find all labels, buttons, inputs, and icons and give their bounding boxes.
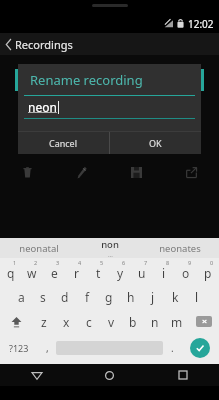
staticText: q <box>7 265 15 281</box>
button[interactable]: 8 <box>153 258 175 284</box>
staticText: n <box>151 314 159 330</box>
staticText: c <box>86 314 92 330</box>
button[interactable]: Share <box>164 160 219 184</box>
staticText: v <box>108 314 115 330</box>
staticText: 6 <box>122 259 126 266</box>
staticText: o <box>182 265 190 281</box>
button[interactable]: d <box>54 284 76 309</box>
button[interactable]: 0 <box>197 258 219 284</box>
button[interactable]: x <box>55 309 78 334</box>
button[interactable]: Backspace <box>188 309 219 334</box>
button[interactable]: OK <box>110 132 201 154</box>
staticText: t <box>96 265 101 281</box>
staticText: 9 <box>188 259 192 266</box>
staticText: f <box>85 289 90 305</box>
staticText: m <box>171 314 183 330</box>
button[interactable]: non <box>78 238 141 258</box>
button[interactable]: Done <box>190 338 210 358</box>
button[interactable]: Recordings <box>0 33 77 55</box>
button[interactable]: neonatal <box>0 238 78 258</box>
staticText: OK <box>149 137 162 149</box>
button[interactable]: m <box>166 309 188 334</box>
button[interactable]: Save <box>109 160 164 184</box>
staticText: Rename recording <box>30 71 143 89</box>
button[interactable]: s <box>32 284 54 309</box>
button[interactable]: 7 <box>131 258 153 284</box>
staticText: 7 <box>144 259 148 266</box>
button[interactable]: h <box>120 284 142 309</box>
button[interactable]: Back <box>0 364 73 386</box>
button[interactable]: Recents <box>146 364 219 386</box>
staticText: 8 <box>166 259 170 266</box>
button[interactable]: ?123 <box>0 334 38 362</box>
staticText: 3 <box>56 259 60 266</box>
staticText: z <box>41 314 47 330</box>
staticText: neon <box>28 99 57 115</box>
button[interactable]: 1 <box>0 258 21 284</box>
staticText: 12:02 <box>188 17 214 31</box>
staticText: . <box>171 341 174 355</box>
button[interactable]: z <box>32 309 55 334</box>
button[interactable]: Cancel <box>18 132 109 154</box>
button[interactable]: a <box>10 284 32 309</box>
button[interactable]: f <box>76 284 98 309</box>
staticText: w <box>27 265 37 281</box>
button[interactable]: Home <box>73 364 146 386</box>
button[interactable]: n <box>144 309 166 334</box>
button[interactable]: b <box>122 309 144 334</box>
staticText: ··· <box>108 252 113 258</box>
staticText: a <box>18 289 25 305</box>
staticText: non <box>101 238 119 251</box>
button[interactable]: l <box>186 284 208 309</box>
staticText: l <box>195 289 199 305</box>
staticText: Recordings <box>15 37 73 52</box>
staticText: x <box>63 314 70 330</box>
button[interactable]: 9 <box>175 258 197 284</box>
staticText: 0 <box>210 259 214 266</box>
staticText: 2 <box>34 259 38 266</box>
button[interactable]: 3 <box>43 258 65 284</box>
staticText: ?123 <box>9 342 29 354</box>
staticText: y <box>117 265 124 281</box>
staticText: i <box>162 265 166 281</box>
button[interactable]: . <box>163 334 181 362</box>
staticText: r <box>74 265 79 281</box>
staticText: u <box>138 265 146 281</box>
button[interactable]: 2 <box>21 258 43 284</box>
staticText: 5 <box>100 259 104 266</box>
staticText: g <box>105 289 113 305</box>
button[interactable]: 4 <box>65 258 87 284</box>
button[interactable]: neonates <box>141 238 219 258</box>
button[interactable]: neon <box>18 96 201 118</box>
staticText: 1 <box>13 259 17 266</box>
staticText: p <box>204 265 212 281</box>
staticText: e <box>51 265 58 281</box>
button[interactable]: 5 <box>87 258 109 284</box>
button[interactable]: v <box>100 309 122 334</box>
button[interactable]: Shift <box>0 309 32 334</box>
staticText: d <box>61 289 69 305</box>
staticText: h <box>127 289 135 305</box>
staticText: k <box>172 289 179 305</box>
staticText: neonatal <box>19 242 59 255</box>
staticText: 4 <box>78 259 82 266</box>
button[interactable]: c <box>78 309 100 334</box>
button[interactable]: k <box>164 284 186 309</box>
staticText: s <box>40 289 46 305</box>
button[interactable]: g <box>98 284 120 309</box>
staticText: b <box>129 314 137 330</box>
staticText: neonates <box>159 242 201 255</box>
button[interactable]: 6 <box>109 258 131 284</box>
staticText: , <box>46 341 49 355</box>
button[interactable]: j <box>142 284 164 309</box>
button[interactable]: Rename <box>54 160 109 184</box>
button[interactable]: , <box>38 334 56 362</box>
staticText: Cancel <box>49 137 78 149</box>
button[interactable]: Delete <box>0 160 54 184</box>
staticText: j <box>151 289 155 305</box>
